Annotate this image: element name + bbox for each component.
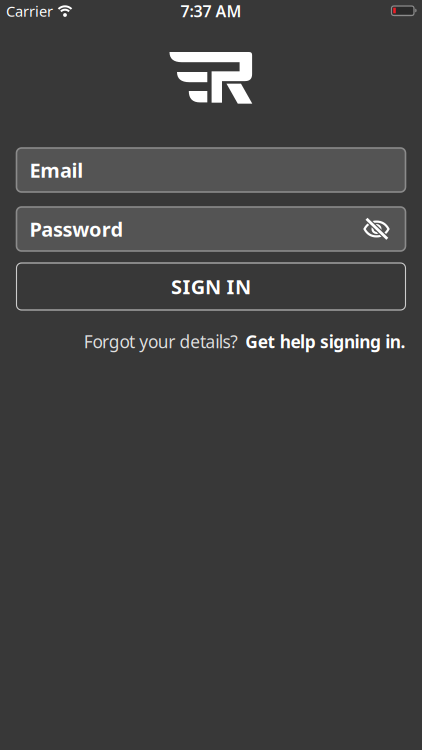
staticText: Forgot your details? [84,330,238,353]
staticText: Password [29,216,123,242]
button[interactable]: SIGN IN [16,263,405,310]
button[interactable]: Show password [363,221,389,237]
button[interactable]: Get help signing in. [245,330,405,353]
staticText: Get help signing in. [245,330,405,353]
staticText: Email [29,157,83,183]
staticText: SIGN IN [171,273,251,300]
staticText: Carrier [6,1,53,21]
staticText: 7:37 AM [180,0,241,22]
